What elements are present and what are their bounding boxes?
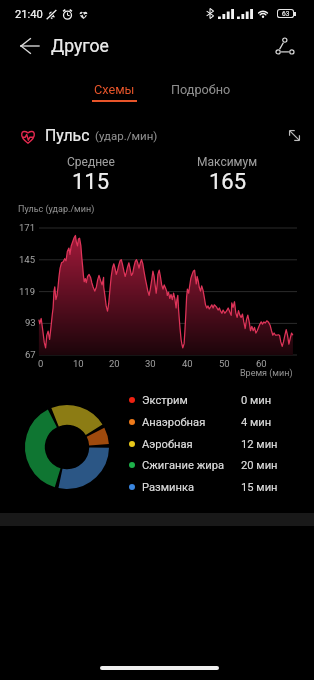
button[interactable]: Аэробная: [129, 435, 287, 453]
staticText: Подробно: [171, 82, 231, 97]
staticText: 21:40: [15, 8, 43, 21]
button[interactable]: Подробно: [162, 71, 240, 109]
staticText: 20: [109, 358, 120, 369]
staticText: Анаэробная: [142, 416, 206, 429]
staticText: Максимум: [197, 155, 258, 169]
staticText: 10: [73, 358, 84, 369]
staticText: Пульс (удар./мин): [18, 204, 95, 215]
staticText: 145: [19, 254, 36, 265]
staticText: Схемы: [94, 82, 135, 97]
staticText: 67: [25, 349, 36, 360]
staticText: Разминка: [142, 481, 195, 494]
button[interactable]: Анаэробная: [129, 413, 287, 431]
staticText: Экстрим: [142, 394, 188, 407]
button[interactable]: Expand chart: [282, 123, 306, 147]
staticText: 40: [182, 358, 193, 369]
staticText: Другое: [51, 36, 109, 57]
staticText: 60: [256, 358, 267, 369]
staticText: (удар./мин): [95, 129, 158, 142]
staticText: 115: [72, 169, 110, 195]
staticText: 4 мин: [241, 416, 272, 429]
staticText: 63: [282, 10, 290, 17]
staticText: Время (мин): [240, 368, 293, 379]
staticText: 50: [219, 358, 230, 369]
staticText: 12 мин: [241, 438, 278, 451]
staticText: 20 мин: [241, 459, 278, 472]
button[interactable]: Сжигание жира: [129, 456, 287, 474]
staticText: Среднее: [67, 155, 115, 169]
button[interactable]: Экстрим: [129, 391, 287, 409]
staticText: 119: [19, 286, 36, 297]
staticText: 93: [25, 317, 36, 328]
staticText: 171: [19, 222, 36, 233]
button[interactable]: Back: [10, 30, 48, 62]
staticText: 165: [209, 169, 247, 195]
staticText: 0 мин: [241, 394, 272, 407]
button[interactable]: Схемы: [82, 71, 146, 109]
staticText: 30: [145, 358, 156, 369]
staticText: Сжигание жира: [142, 459, 225, 472]
staticText: Аэробная: [142, 438, 193, 451]
staticText: 0: [38, 358, 44, 369]
staticText: 15 мин: [241, 481, 278, 494]
button[interactable]: Share: [266, 30, 304, 62]
staticText: Пульс: [45, 126, 90, 145]
button[interactable]: Разминка: [129, 478, 287, 496]
